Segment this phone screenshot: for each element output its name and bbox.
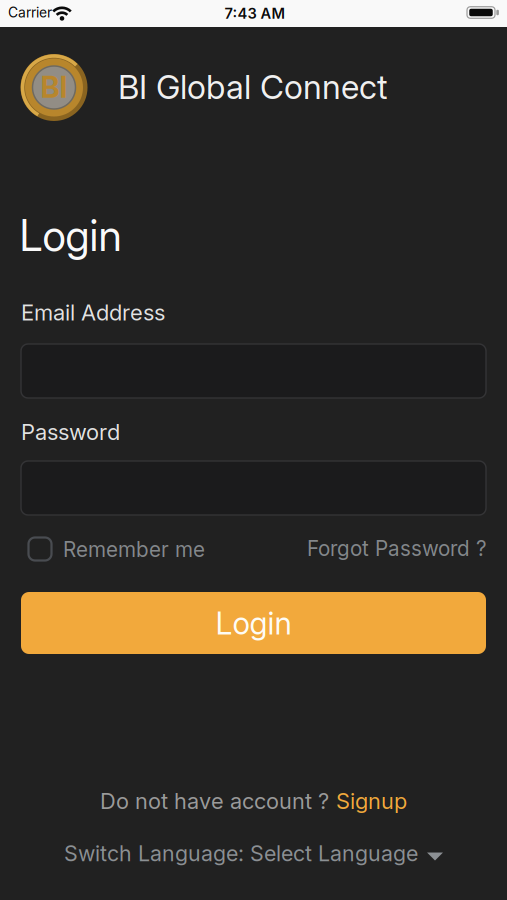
- staticText: Password: [21, 419, 120, 445]
- staticText: BI Global Connect: [118, 67, 387, 107]
- staticText: Login: [19, 210, 121, 261]
- staticText: BI: [40, 69, 67, 105]
- staticText: Forgot Password ?: [307, 536, 487, 561]
- staticText: Login: [215, 605, 291, 642]
- staticText: Switch Language: Select Language: [64, 840, 418, 866]
- staticText: Remember me: [63, 537, 205, 562]
- staticText: Signup: [336, 788, 407, 814]
- staticText: Do not have account ?: [100, 788, 329, 814]
- staticText: Carrier: [8, 4, 52, 21]
- staticText: Email Address: [21, 299, 165, 326]
- staticText: 7:43 AM: [224, 5, 285, 22]
